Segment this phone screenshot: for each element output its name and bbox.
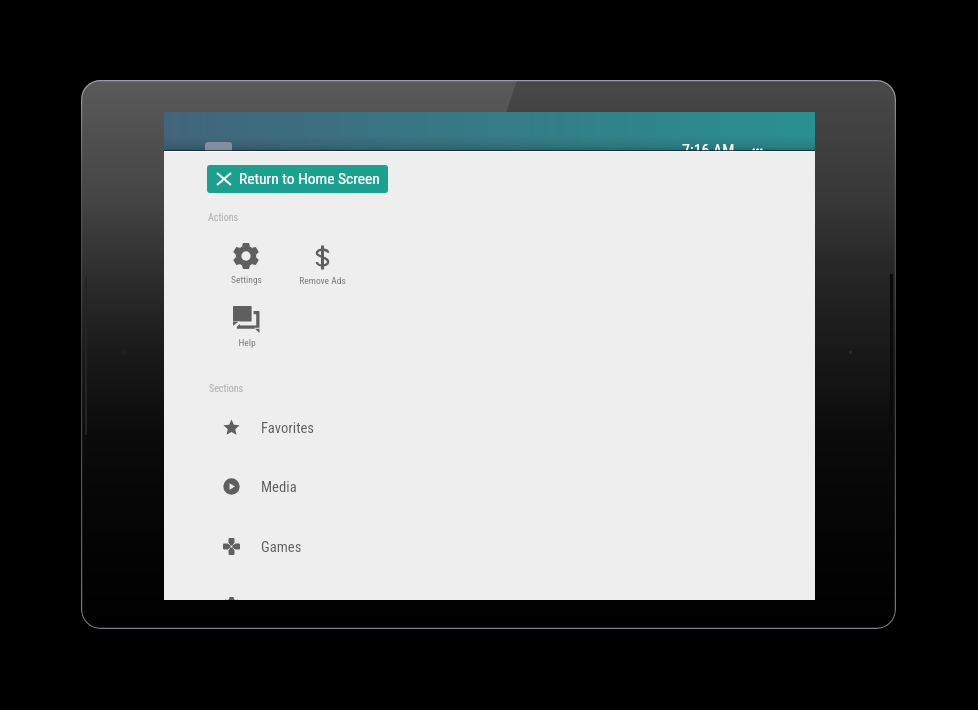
button[interactable]: Return to Home Screen xyxy=(207,165,388,193)
button[interactable]: Settings xyxy=(210,233,282,287)
staticText: Remove Ads xyxy=(299,275,346,286)
staticText: Return to Home Screen xyxy=(239,170,380,188)
button[interactable]: Help xyxy=(211,296,283,350)
button[interactable]: Favorites xyxy=(164,398,815,457)
staticText: Sections xyxy=(209,383,244,395)
staticText: Settings xyxy=(231,274,262,285)
button[interactable]: Settings xyxy=(164,576,815,600)
staticText: Actions xyxy=(208,212,239,224)
button[interactable]: Remove Ads xyxy=(286,234,358,288)
staticText: Games xyxy=(261,538,302,555)
button[interactable]: Games xyxy=(164,517,815,576)
staticText: 7:16 AM xyxy=(682,141,735,151)
staticText: Favorites xyxy=(261,419,315,436)
staticText: ••• xyxy=(752,144,764,151)
staticText: Help xyxy=(238,337,256,348)
button[interactable]: Media xyxy=(164,457,815,516)
staticText: Media xyxy=(261,478,297,495)
